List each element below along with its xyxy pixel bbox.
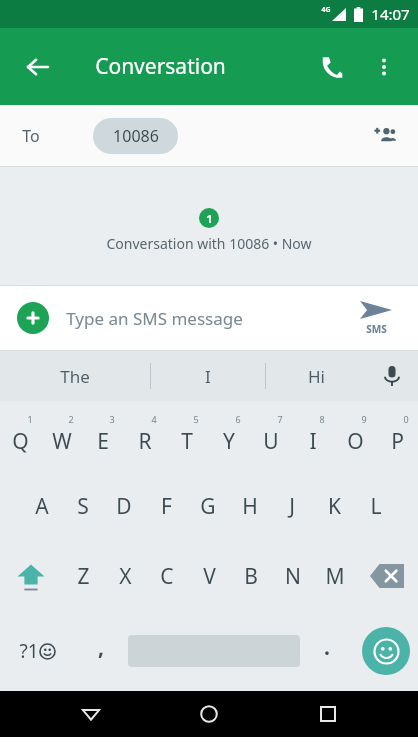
button[interactable]: 6 <box>208 401 250 471</box>
button[interactable]: Call <box>308 43 356 91</box>
button[interactable]: Symbols <box>0 611 74 691</box>
button[interactable]: F <box>145 471 187 541</box>
button[interactable]: S <box>62 471 103 541</box>
staticText: 4G <box>321 5 331 15</box>
staticText: R <box>138 427 152 456</box>
button[interactable]: Recents <box>300 691 356 737</box>
staticText: V <box>203 562 216 591</box>
button[interactable]: Hi <box>266 351 366 401</box>
staticText: U <box>263 427 279 456</box>
staticText: The <box>60 365 90 388</box>
staticText: F <box>161 492 172 521</box>
staticText: Z <box>77 562 90 591</box>
button[interactable]: H <box>229 471 271 541</box>
button[interactable]: Back <box>63 691 119 737</box>
button[interactable]: Send SMS <box>348 290 404 346</box>
button[interactable]: Add recipient <box>362 114 406 158</box>
staticText: SMS <box>366 322 387 336</box>
staticText: 7 <box>277 413 283 425</box>
staticText: 8 <box>319 413 325 425</box>
staticText: , <box>98 633 104 662</box>
button[interactable]: 9 <box>334 401 376 471</box>
button[interactable]: M <box>314 541 356 611</box>
staticText: W <box>52 427 72 456</box>
staticText: 1 <box>206 211 213 226</box>
staticText: 0 <box>403 413 409 425</box>
button[interactable]: 5 <box>166 401 208 471</box>
button[interactable]: 2 <box>41 401 82 471</box>
button[interactable]: Emoji <box>354 611 418 691</box>
staticText: T <box>181 427 193 456</box>
button[interactable]: C <box>146 541 188 611</box>
staticText: I <box>205 365 211 388</box>
button[interactable]: 1 <box>0 401 41 471</box>
staticText: X <box>119 562 132 591</box>
staticText: . <box>324 633 330 662</box>
staticText: ?1 <box>19 638 39 664</box>
staticText: Type an SMS message <box>66 307 243 330</box>
staticText: 9 <box>361 413 367 425</box>
staticText: 4 <box>151 413 157 425</box>
button[interactable]: Z <box>62 541 104 611</box>
button[interactable]: Shift <box>0 541 62 611</box>
button[interactable]: Back <box>14 43 62 91</box>
staticText: 5 <box>193 413 199 425</box>
button[interactable]: Add attachment <box>17 302 49 334</box>
button[interactable]: B <box>230 541 272 611</box>
button[interactable]: 0 <box>376 401 418 471</box>
staticText: A <box>35 492 49 521</box>
button[interactable]: V <box>188 541 230 611</box>
button[interactable]: K <box>313 471 355 541</box>
button[interactable]: Home <box>181 691 237 737</box>
button[interactable]: G <box>187 471 229 541</box>
button[interactable]: 10086 <box>93 118 178 154</box>
staticText: 2 <box>68 413 74 425</box>
button[interactable]: Type an SMS message <box>66 293 336 343</box>
staticText: N <box>285 562 301 591</box>
staticText: 14:07 <box>371 4 410 24</box>
button[interactable]: Space <box>128 611 300 691</box>
staticText: K <box>328 492 341 521</box>
button[interactable]: The <box>0 351 150 401</box>
staticText: S <box>77 492 89 521</box>
button[interactable]: L <box>355 471 397 541</box>
staticText: Hi <box>308 365 325 388</box>
button[interactable]: More options <box>362 45 406 89</box>
button[interactable]: 7 <box>250 401 292 471</box>
staticText: Conversation <box>95 52 226 81</box>
button[interactable]: D <box>103 471 145 541</box>
button[interactable]: A <box>21 471 62 541</box>
staticText: D <box>116 492 132 521</box>
staticText: Y <box>223 427 235 456</box>
button[interactable]: I <box>151 351 265 401</box>
staticText: J <box>289 492 295 521</box>
staticText: L <box>370 492 382 521</box>
staticText: E <box>97 427 109 456</box>
staticText: 10086 <box>113 125 159 147</box>
staticText: 3 <box>109 413 115 425</box>
staticText: M <box>325 562 345 591</box>
staticText: To <box>22 125 40 147</box>
staticText: Q <box>12 427 29 456</box>
button[interactable]: Backspace <box>356 541 418 611</box>
staticText: Conversation with 10086 • Now <box>106 234 312 253</box>
button[interactable]: . <box>300 611 354 691</box>
staticText: P <box>391 427 404 456</box>
button[interactable]: N <box>272 541 314 611</box>
staticText: B <box>244 562 258 591</box>
staticText: G <box>200 492 216 521</box>
button[interactable]: Voice input <box>366 351 418 401</box>
button[interactable]: X <box>104 541 146 611</box>
staticText: 6 <box>235 413 241 425</box>
staticText: O <box>347 427 364 456</box>
button[interactable]: , <box>74 611 128 691</box>
staticText: 1 <box>27 413 33 425</box>
button[interactable]: J <box>271 471 313 541</box>
button[interactable]: 3 <box>82 401 124 471</box>
staticText: H <box>242 492 258 521</box>
button[interactable]: 4 <box>124 401 166 471</box>
staticText: I <box>309 427 317 456</box>
button[interactable]: 8 <box>292 401 334 471</box>
staticText: C <box>160 562 174 591</box>
